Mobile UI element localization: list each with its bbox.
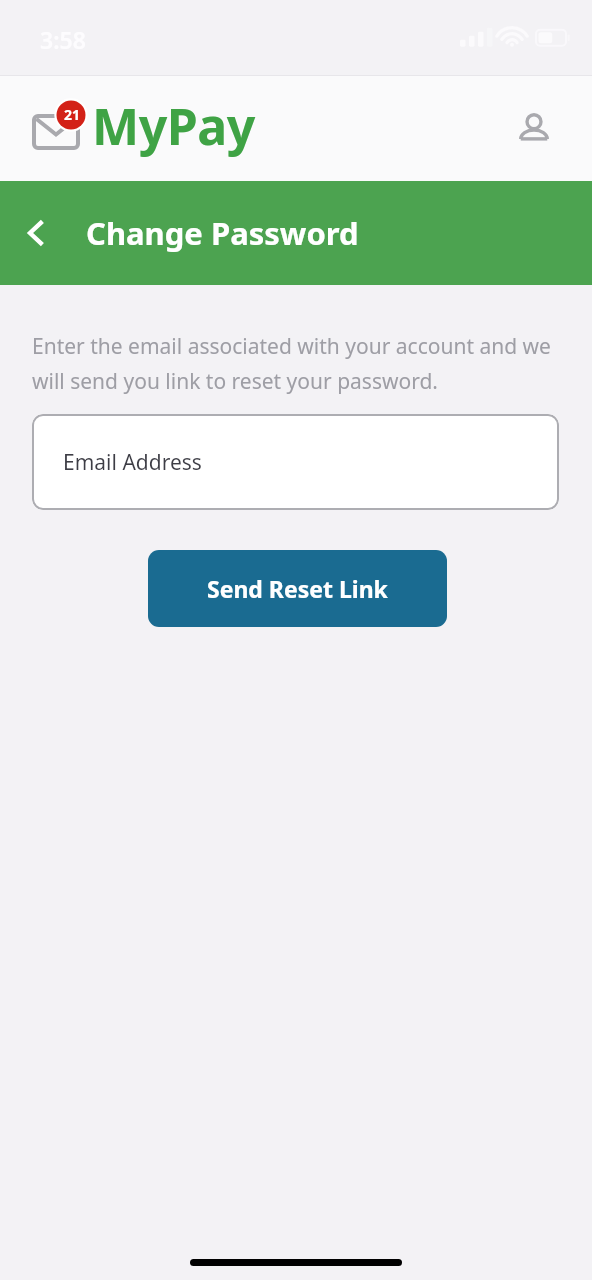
staticText: Change Password — [86, 212, 359, 254]
button[interactable]: Back — [12, 209, 60, 257]
staticText: MyPay — [92, 92, 255, 160]
button[interactable]: Email Address — [32, 414, 559, 510]
staticText: 21 — [61, 105, 83, 124]
staticText: Enter the email associated with your acc… — [32, 332, 562, 395]
staticText: Send Reset Link — [207, 573, 388, 604]
button[interactable]: Profile — [512, 106, 556, 150]
button[interactable]: Send Reset Link — [148, 550, 447, 627]
staticText: Email Address — [63, 448, 202, 477]
staticText: 3:58 — [40, 24, 86, 55]
button[interactable]: Messages, 21 unread — [34, 104, 86, 152]
